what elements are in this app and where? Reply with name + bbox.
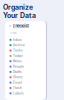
staticText: Your Data <box>3 11 36 20</box>
staticText: Organize <box>3 3 33 11</box>
button[interactable]: Archive <box>9 43 46 47</box>
staticText: Cherry <box>13 75 23 79</box>
button[interactable]: Notes <box>9 59 46 63</box>
staticText: Notes <box>13 59 22 63</box>
staticText: People <box>13 65 24 68</box>
staticText: Labels <box>13 91 24 95</box>
staticText: Drafts <box>13 70 22 74</box>
staticText: Checklist <box>13 23 29 28</box>
staticText: Groups <box>9 31 16 34</box>
staticText: Today <box>13 54 23 58</box>
button[interactable]: Drafts <box>9 70 46 74</box>
button[interactable]: Email <box>9 81 46 84</box>
button[interactable]: Labels <box>9 91 46 95</box>
button[interactable]: Cherry <box>9 75 46 79</box>
staticText: Email <box>13 81 22 84</box>
button[interactable]: Tasks <box>9 49 46 52</box>
staticText: Inbox <box>13 38 22 41</box>
button[interactable]: Trash <box>9 86 46 90</box>
staticText: Tasks <box>13 49 23 52</box>
staticText: Archive <box>13 43 25 47</box>
staticText: Trash <box>13 86 22 90</box>
button[interactable]: Today <box>9 54 46 58</box>
button[interactable]: People <box>9 65 46 68</box>
button[interactable]: Inbox <box>9 38 46 41</box>
